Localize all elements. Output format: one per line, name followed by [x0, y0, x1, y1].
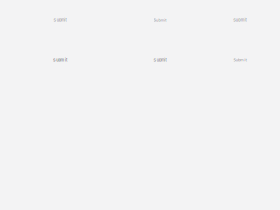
staticText: Submit	[212, 10, 267, 29]
staticText: Submit	[154, 58, 166, 62]
staticText: Submit	[53, 58, 67, 62]
staticText: Submit	[54, 18, 66, 22]
staticText: Submit	[234, 58, 246, 62]
